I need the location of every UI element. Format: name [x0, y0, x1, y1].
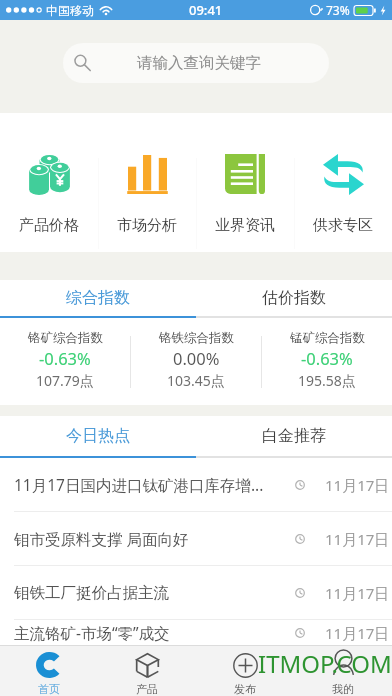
staticText: 11月17日国内进口钛矿港口库存增...: [14, 474, 289, 495]
staticText: 11月17日: [325, 583, 390, 603]
button[interactable]: 供求专区: [294, 113, 392, 235]
staticText: 市场分析: [117, 216, 177, 235]
staticText: 11月17日: [325, 623, 390, 643]
staticText: -0.63%: [301, 347, 353, 369]
button[interactable]: 今日热点: [0, 416, 196, 456]
button[interactable]: Products: [98, 646, 196, 696]
staticText: 铬矿综合指数: [28, 330, 103, 346]
staticText: 73%: [326, 2, 350, 18]
button[interactable]: 业界资讯: [196, 113, 294, 235]
staticText: 11月17日: [325, 475, 390, 495]
staticText: 估价指数: [262, 288, 326, 308]
staticText: 综合指数: [66, 288, 130, 308]
staticText: 首页: [38, 682, 60, 696]
button[interactable]: 铬铁综合指数: [131, 318, 261, 390]
staticText: 钼铁工厂挺价占据主流: [14, 583, 289, 603]
button[interactable]: 白金推荐: [196, 416, 392, 456]
staticText: 铬铁综合指数: [159, 330, 234, 346]
staticText: 业界资讯: [215, 216, 275, 235]
button[interactable]: 请输入查询关键字: [63, 43, 329, 83]
staticText: 发布: [234, 682, 256, 696]
staticText: 主流铬矿-市场“零”成交: [14, 622, 289, 643]
button[interactable]: 钼市受原料支撑 局面向好: [0, 512, 392, 565]
button[interactable]: 主流铬矿-市场“零”成交: [0, 620, 392, 645]
button[interactable]: 综合指数: [0, 280, 196, 316]
button[interactable]: Mine: [294, 646, 392, 696]
button[interactable]: 钼铁工厂挺价占据主流: [0, 566, 392, 619]
staticText: 我的: [332, 682, 354, 696]
button[interactable]: 市场分析: [98, 113, 196, 235]
staticText: 锰矿综合指数: [290, 330, 365, 346]
staticText: 产品价格: [19, 216, 79, 235]
staticText: 供求专区: [313, 216, 373, 235]
staticText: 103.45点: [167, 371, 225, 390]
staticText: 中国移动: [46, 3, 94, 18]
staticText: 107.79点: [36, 371, 94, 390]
staticText: 195.58点: [298, 371, 356, 390]
staticText: 钼市受原料支撑 局面向好: [14, 528, 289, 549]
button[interactable]: 铬矿综合指数: [0, 318, 130, 390]
staticText: 今日热点: [66, 426, 130, 446]
button[interactable]: 估价指数: [196, 280, 392, 316]
button[interactable]: 锰矿综合指数: [262, 318, 392, 390]
button[interactable]: 11月17日国内进口钛矿港口库存增...: [0, 458, 392, 511]
button[interactable]: Publish: [196, 646, 294, 696]
staticText: -0.63%: [39, 347, 91, 369]
staticText: 0.00%: [173, 347, 220, 369]
button[interactable]: Home: [0, 646, 98, 696]
staticText: ITMOP.COM: [258, 647, 392, 680]
staticText: 09:41: [189, 1, 223, 19]
staticText: 产品: [136, 682, 158, 696]
staticText: 请输入查询关键字: [137, 53, 261, 73]
staticText: 白金推荐: [262, 426, 326, 446]
button[interactable]: 产品价格: [0, 113, 98, 235]
staticText: 11月17日: [325, 529, 390, 549]
